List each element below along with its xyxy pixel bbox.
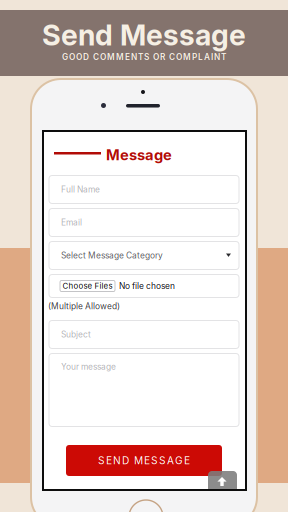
button[interactable]: Your message	[49, 353, 239, 426]
button[interactable]: Subject	[49, 320, 239, 348]
staticText: SEND MESSAGE	[98, 454, 190, 467]
staticText: Choose Files	[62, 281, 112, 291]
button[interactable]: Full Name	[49, 175, 239, 203]
button[interactable]: Choose Files	[49, 274, 239, 297]
staticText: Email	[61, 217, 82, 228]
staticText: No file chosen	[119, 281, 175, 291]
button[interactable]: SEND MESSAGE	[66, 445, 222, 476]
staticText: Full Name	[61, 184, 100, 195]
staticText: (Multiple Allowed)	[48, 301, 120, 311]
staticText: GOOD COMMENTS OR COMPLAINT	[62, 52, 226, 62]
staticText: Select Message Category	[61, 250, 163, 261]
staticText: Message	[106, 146, 172, 164]
staticText: Subject	[61, 329, 91, 340]
button[interactable]: Email	[49, 208, 239, 236]
staticText: Your message	[61, 361, 116, 372]
button[interactable]: Select Message Category	[49, 241, 239, 269]
staticText: Send Message	[42, 18, 246, 52]
button[interactable]: Scroll to top	[208, 471, 237, 495]
